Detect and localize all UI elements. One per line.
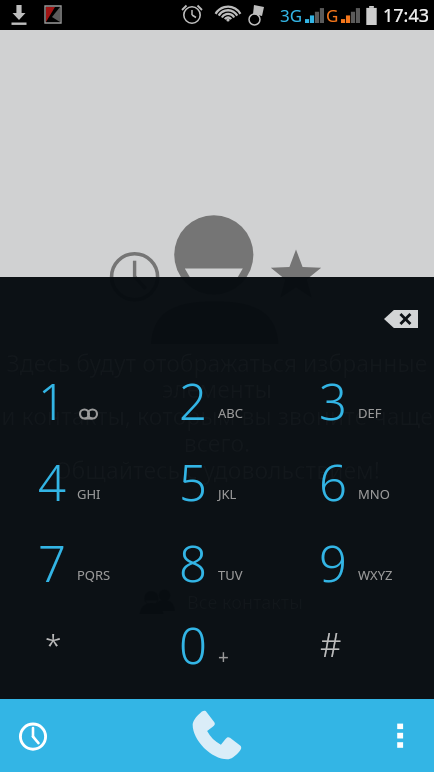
- staticText: MNO: [358, 485, 390, 503]
- staticText: 2: [179, 368, 207, 435]
- button[interactable]: Recents: [9, 712, 57, 760]
- staticText: 0: [179, 612, 207, 679]
- staticText: #: [320, 622, 342, 667]
- staticText: 17:43: [383, 3, 430, 28]
- button[interactable]: 7: [6, 522, 147, 603]
- staticText: Здесь будут отображаться избранные элеме…: [0, 347, 434, 486]
- staticText: 5: [179, 449, 207, 516]
- staticText: JKL: [218, 485, 237, 503]
- staticText: 1: [38, 368, 66, 435]
- staticText: PQRS: [77, 566, 111, 584]
- button[interactable]: 6: [287, 441, 428, 522]
- button[interactable]: *: [6, 604, 147, 685]
- button[interactable]: 9: [287, 522, 428, 603]
- staticText: DEF: [358, 404, 382, 422]
- staticText: +: [218, 644, 229, 670]
- staticText: 8: [179, 530, 207, 597]
- staticText: 7: [38, 530, 66, 597]
- button[interactable]: Backspace: [372, 297, 430, 341]
- button[interactable]: 0: [147, 604, 288, 685]
- button[interactable]: 8: [147, 522, 288, 603]
- staticText: 9: [319, 530, 347, 597]
- staticText: WXYZ: [358, 566, 393, 584]
- button[interactable]: 4: [6, 441, 147, 522]
- staticText: TUV: [218, 566, 243, 584]
- button[interactable]: 5: [147, 441, 288, 522]
- staticText: 3: [319, 368, 347, 435]
- button[interactable]: 3: [287, 360, 428, 441]
- staticText: ABC: [218, 404, 243, 422]
- button[interactable]: 2: [147, 360, 288, 441]
- staticText: 6: [319, 449, 347, 516]
- staticText: 3G: [280, 4, 303, 27]
- button[interactable]: Dial: [182, 702, 252, 772]
- button[interactable]: #: [287, 604, 428, 685]
- staticText: 4: [38, 449, 66, 516]
- staticText: G: [326, 4, 339, 27]
- staticText: *: [45, 624, 62, 665]
- button[interactable]: More options: [378, 711, 422, 755]
- button[interactable]: 1: [6, 360, 147, 441]
- staticText: GHI: [77, 485, 101, 503]
